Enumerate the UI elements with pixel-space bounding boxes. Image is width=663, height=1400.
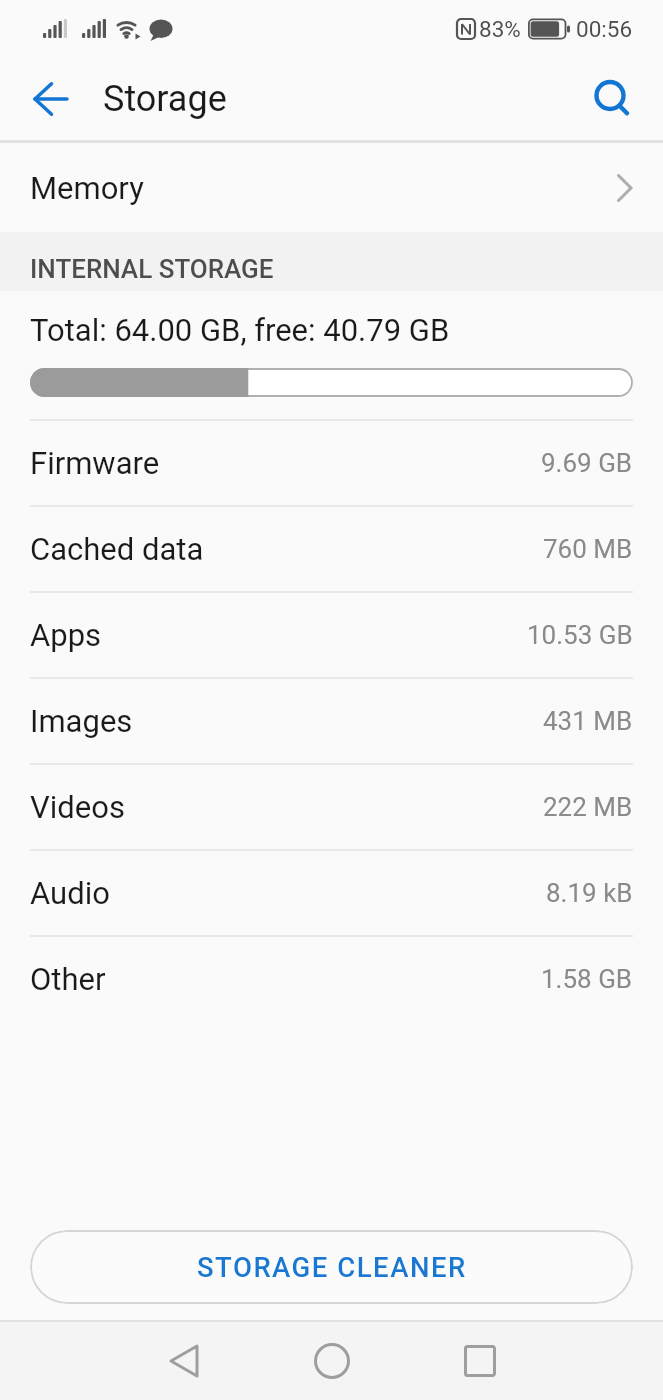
staticText: Total: 64.00 GB, free: 40.79 GB xyxy=(30,312,450,348)
staticText: Memory xyxy=(30,170,144,206)
staticText: 8.19 kB xyxy=(546,878,633,908)
button[interactable] xyxy=(406,1322,554,1400)
staticText: INTERNAL STORAGE xyxy=(30,254,274,284)
button[interactable]: STORAGE CLEANER xyxy=(30,1230,633,1304)
staticText: STORAGE CLEANER xyxy=(197,1251,467,1283)
staticText: Firmware xyxy=(30,445,160,481)
button[interactable]: Cached data xyxy=(0,507,663,591)
button[interactable]: Apps xyxy=(0,593,663,677)
staticText: Apps xyxy=(30,617,102,653)
staticText: 1.58 GB xyxy=(541,964,633,994)
staticText: 83% xyxy=(479,16,521,42)
button[interactable]: Firmware xyxy=(0,421,663,505)
staticText: 431 MB xyxy=(543,706,633,736)
button[interactable] xyxy=(34,83,68,115)
staticText: 760 MB xyxy=(543,534,633,564)
button[interactable]: Memory xyxy=(0,143,663,232)
button[interactable] xyxy=(594,81,630,117)
button[interactable] xyxy=(110,1322,258,1400)
staticText: 00:56 xyxy=(576,16,633,42)
button[interactable]: Audio xyxy=(0,851,663,935)
button[interactable] xyxy=(258,1322,406,1400)
button[interactable]: Videos xyxy=(0,765,663,849)
staticText: Audio xyxy=(30,875,110,911)
staticText: Storage xyxy=(103,78,227,120)
button[interactable]: Images xyxy=(0,679,663,763)
staticText: 222 MB xyxy=(543,792,633,822)
staticText: Images xyxy=(30,703,133,739)
staticText: 10.53 GB xyxy=(527,620,633,650)
staticText: Cached data xyxy=(30,531,204,567)
staticText: 9.69 GB xyxy=(541,448,633,478)
staticText: Videos xyxy=(30,789,125,825)
staticText: Other xyxy=(30,961,106,997)
button[interactable]: Other xyxy=(0,937,663,1021)
